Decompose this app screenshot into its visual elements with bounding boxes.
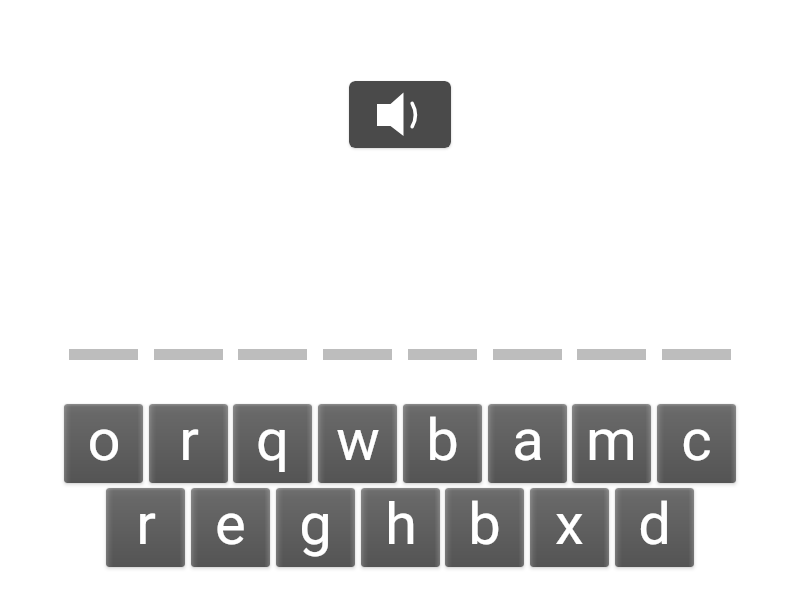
staticText: c <box>681 406 712 474</box>
button[interactable]: w <box>318 404 397 483</box>
staticText: e <box>215 490 246 558</box>
staticText: b <box>426 406 459 474</box>
button[interactable]: b <box>445 488 524 567</box>
staticText: q <box>256 406 289 474</box>
button[interactable]: c <box>657 404 736 483</box>
button[interactable]: o <box>64 404 143 483</box>
staticText: g <box>299 490 332 558</box>
staticText: b <box>468 490 501 558</box>
staticText: d <box>638 490 671 558</box>
staticText: a <box>512 406 544 474</box>
button[interactable]: b <box>403 404 482 483</box>
staticText: h <box>385 490 417 558</box>
staticText: r <box>179 406 199 474</box>
button[interactable]: d <box>615 488 694 567</box>
staticText: x <box>555 490 584 558</box>
button[interactable]: h <box>361 488 440 567</box>
button[interactable]: e <box>191 488 270 567</box>
button[interactable]: g <box>276 488 355 567</box>
button[interactable]: m <box>572 404 651 483</box>
button[interactable]: q <box>233 404 312 483</box>
staticText: o <box>87 406 121 474</box>
staticText: w <box>336 406 380 474</box>
button[interactable]: Play audio <box>349 81 451 148</box>
staticText: m <box>586 406 637 474</box>
button[interactable]: a <box>488 404 567 483</box>
button[interactable]: r <box>149 404 228 483</box>
button[interactable]: r <box>106 488 185 567</box>
button[interactable]: x <box>530 488 609 567</box>
staticText: r <box>136 490 156 558</box>
